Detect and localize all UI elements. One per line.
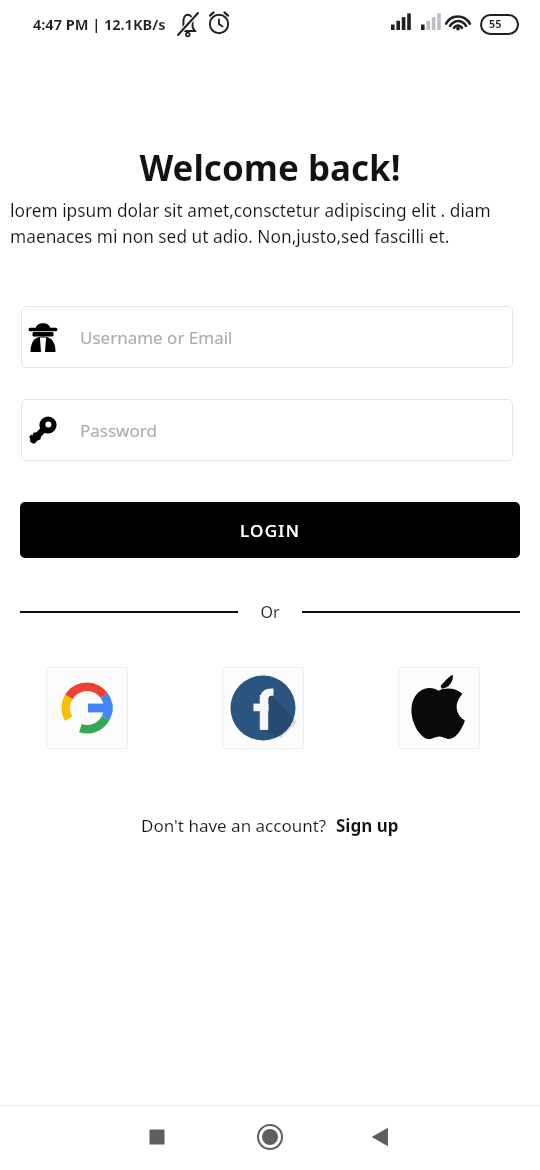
button[interactable]: Home bbox=[250, 1117, 290, 1157]
staticText: Password bbox=[80, 419, 157, 442]
staticText: Don't have an account? bbox=[141, 814, 336, 837]
button[interactable]: Back bbox=[360, 1117, 400, 1157]
staticText: 55 bbox=[489, 16, 502, 31]
staticText: lorem ipsum dolar sit amet,consctetur ad… bbox=[10, 199, 532, 248]
staticText: LOGIN bbox=[240, 519, 301, 542]
staticText: Or bbox=[252, 601, 288, 623]
staticText: Welcome back! bbox=[0, 144, 540, 192]
staticText: Sign up bbox=[336, 814, 399, 837]
button[interactable]: Sign in bbox=[46, 667, 128, 749]
button[interactable]: Password bbox=[21, 399, 513, 461]
button[interactable]: Sign in bbox=[398, 667, 480, 749]
staticText: 4:47 PM | 12.1KB/s bbox=[33, 14, 166, 34]
button[interactable]: LOGIN bbox=[20, 502, 520, 558]
staticText: Username or Email bbox=[80, 326, 233, 349]
button[interactable]: Sign in bbox=[222, 667, 304, 749]
button[interactable]: Username or Email bbox=[21, 306, 513, 368]
button[interactable]: Sign up bbox=[336, 814, 399, 837]
button[interactable]: Recent apps bbox=[137, 1117, 177, 1157]
